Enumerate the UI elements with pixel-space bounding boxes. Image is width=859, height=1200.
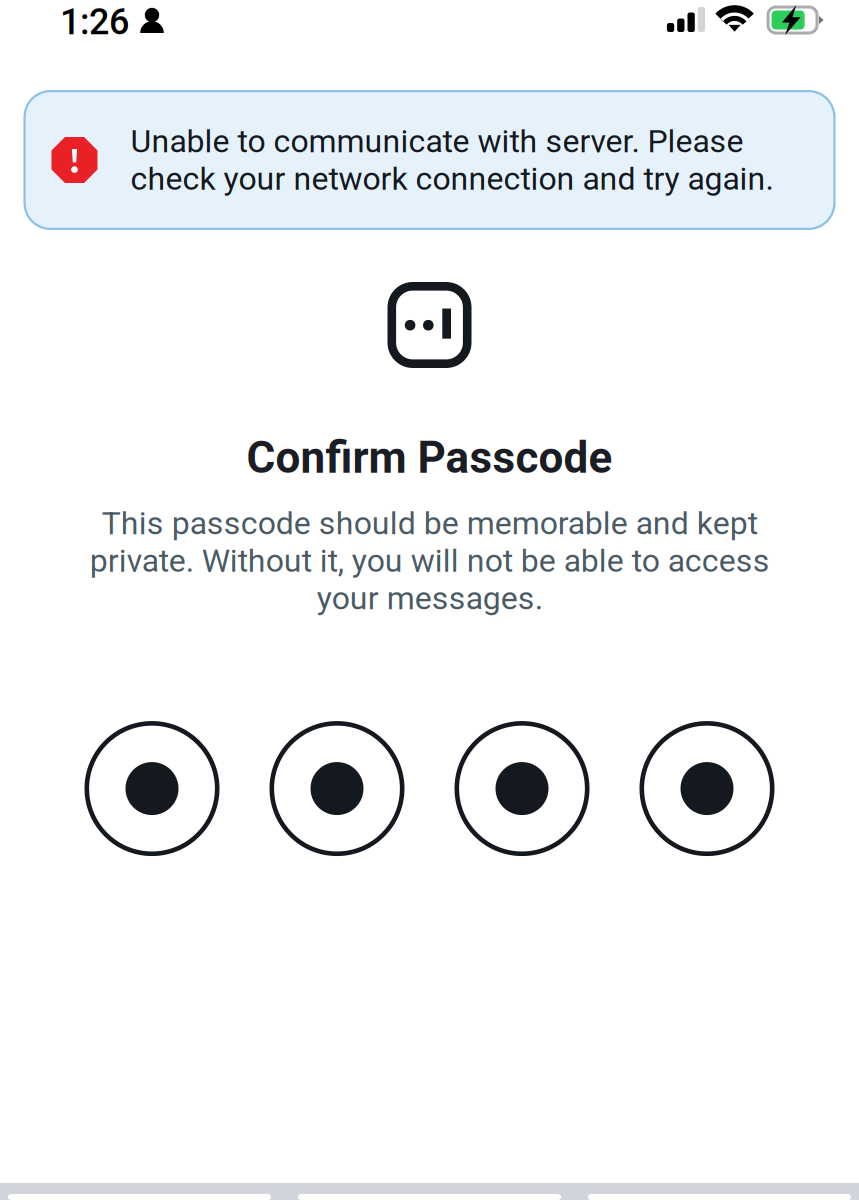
staticText: Confirm Passcode [246,432,612,484]
staticText: This passcode should be memorable and ke… [89,505,769,617]
staticText: Unable to communicate with server. Pleas… [130,122,773,197]
staticText: 1:26 [60,1,129,43]
